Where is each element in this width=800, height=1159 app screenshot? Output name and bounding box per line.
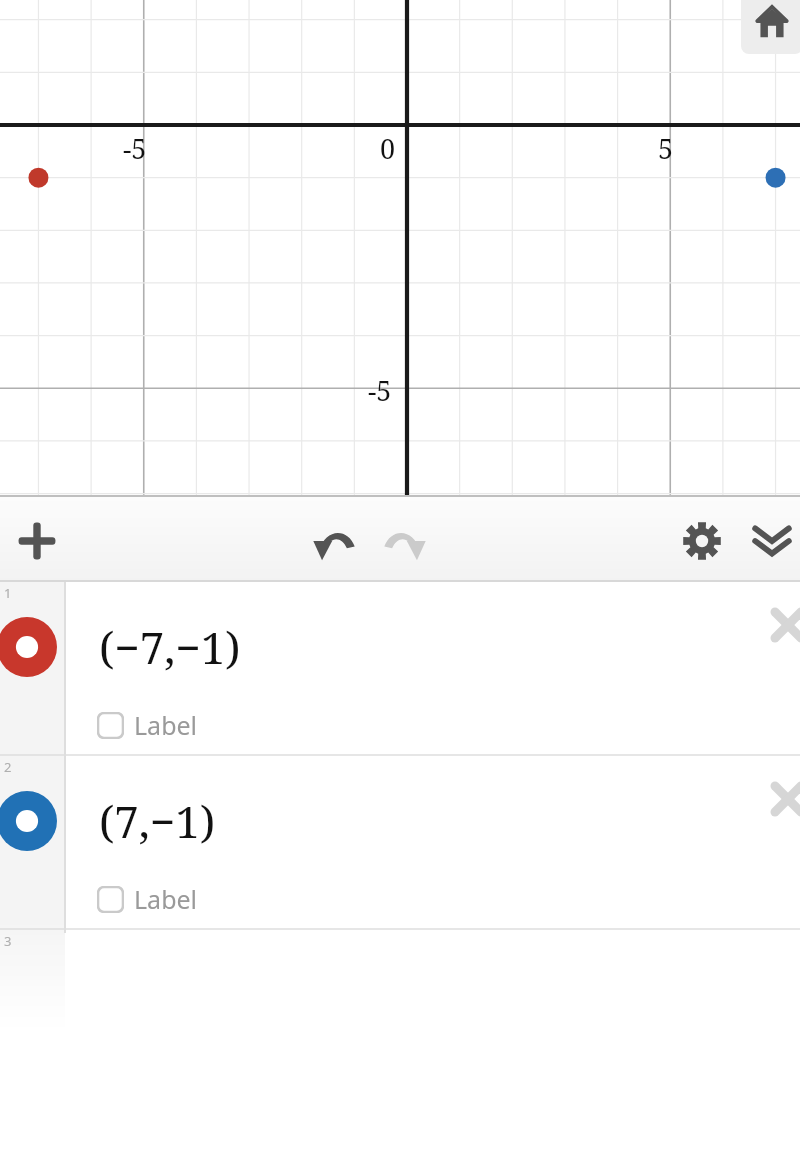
staticText: (−7,−1) (99, 617, 241, 677)
button[interactable]: Home (741, 0, 800, 54)
staticText: 5 (658, 130, 674, 167)
button[interactable]: Collapse (742, 511, 800, 571)
staticText: 3 (4, 932, 12, 950)
button[interactable]: Toggle point visibility (0, 617, 57, 677)
staticText: Label (134, 708, 198, 742)
button[interactable]: Settings (672, 511, 732, 571)
staticText: 0 (380, 130, 396, 167)
button[interactable]: Redo (375, 511, 435, 571)
button[interactable]: Delete expression (762, 599, 800, 651)
button[interactable]: Label (97, 882, 198, 916)
staticText: -5 (368, 372, 392, 409)
button[interactable]: Toggle point visibility (0, 791, 57, 851)
button[interactable]: 2 (0, 756, 800, 929)
button[interactable]: Delete expression (762, 773, 800, 825)
button[interactable]: Label (97, 708, 198, 742)
staticText: (7,−1) (99, 791, 216, 851)
button[interactable]: 1 (0, 582, 800, 755)
staticText: Label (134, 882, 198, 916)
staticText: 2 (4, 758, 12, 776)
staticText: -5 (123, 130, 147, 167)
button[interactable]: Add expression (7, 511, 67, 571)
staticText: 1 (4, 584, 12, 602)
button[interactable]: Undo (304, 511, 364, 571)
